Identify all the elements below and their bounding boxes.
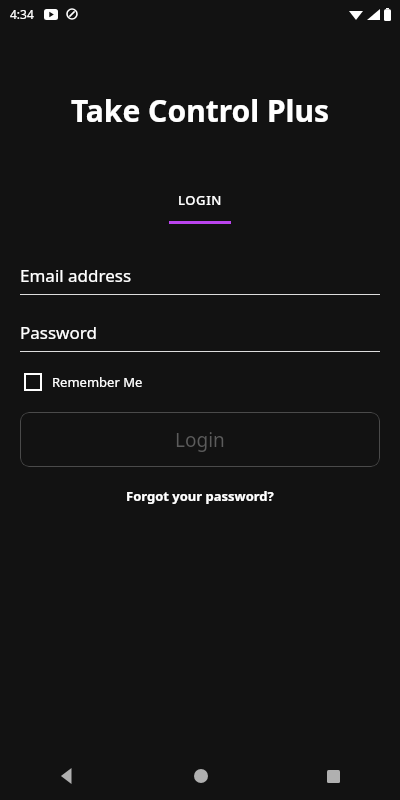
button[interactable]: Forgot your password? <box>116 484 284 508</box>
button[interactable]: Password <box>20 321 380 352</box>
staticText: 4:34 <box>10 6 34 22</box>
button[interactable]: Email address <box>20 264 380 295</box>
staticText: Login <box>175 427 225 453</box>
button[interactable]: Back <box>0 752 134 800</box>
staticText: Take Control Plus <box>0 90 400 131</box>
button[interactable]: Login <box>20 412 380 467</box>
staticText: Password <box>20 321 97 344</box>
staticText: LOGIN <box>178 191 223 209</box>
staticText: Email address <box>20 264 132 287</box>
button[interactable]: Recent apps <box>267 752 400 800</box>
button[interactable]: Home <box>134 752 267 800</box>
button[interactable]: LOGIN <box>153 187 247 228</box>
staticText: Remember Me <box>52 373 143 391</box>
button[interactable]: Remember Me <box>20 371 147 393</box>
